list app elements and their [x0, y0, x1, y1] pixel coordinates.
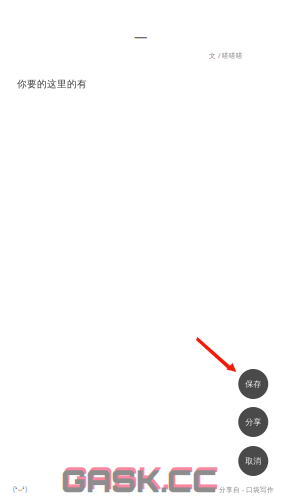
staticText: GASK.CC [63, 459, 219, 497]
staticText: 文 / 嗒嗒嗒 [209, 51, 243, 60]
staticText: 取消 [245, 456, 261, 466]
button[interactable]: 保存 [238, 369, 268, 399]
button[interactable]: 分享 [238, 407, 268, 437]
staticText: 分享自 - 口袋写作 [219, 485, 274, 494]
staticText: — [134, 27, 147, 45]
button[interactable]: 取消 [238, 446, 268, 476]
staticText: (•̀ᴗ•́) [13, 484, 27, 493]
staticText: 保存 [245, 379, 261, 389]
staticText: GASK.CC [61, 462, 217, 500]
staticText: 分享 [245, 417, 261, 427]
staticText: 你要的这里的有 [17, 78, 87, 90]
